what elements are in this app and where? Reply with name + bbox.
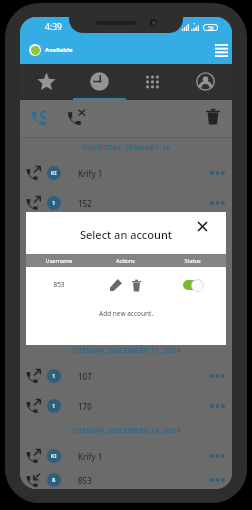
staticText: TUESDAY, DECEMBER 31, 2024 xyxy=(72,346,181,356)
staticText: Username xyxy=(26,257,92,264)
staticText: Select an account xyxy=(80,227,172,242)
staticText: KI xyxy=(51,169,57,177)
staticText: KI xyxy=(51,452,57,460)
button[interactable]: More options xyxy=(206,190,228,216)
staticText: Krify 1 xyxy=(78,168,103,179)
button[interactable]: Close xyxy=(193,217,211,235)
staticText: 853 xyxy=(26,280,92,289)
staticText: 152 xyxy=(78,198,92,209)
staticText: 1 xyxy=(52,372,56,380)
staticText: Add new account. xyxy=(99,309,154,318)
staticText: 1 xyxy=(52,199,56,207)
button[interactable]: All calls xyxy=(29,106,50,127)
staticText: 107 xyxy=(78,371,92,382)
staticText: 56 xyxy=(208,25,214,30)
staticText: TUESDAY, DECEMBER 24, 2024 xyxy=(72,426,181,436)
button[interactable]: More options xyxy=(206,160,228,186)
button[interactable]: Recents xyxy=(73,64,126,100)
button[interactable]: 1 xyxy=(20,391,232,421)
button[interactable]: 1 xyxy=(20,361,232,391)
staticText: 1 xyxy=(52,402,56,410)
button[interactable]: Favorites xyxy=(20,64,73,100)
button[interactable]: 1 xyxy=(20,188,232,218)
staticText: Status xyxy=(159,257,226,264)
button[interactable]: Add new account. xyxy=(26,304,226,345)
button[interactable]: More options xyxy=(206,393,228,419)
staticText: 4:39 xyxy=(45,21,62,33)
button[interactable]: 8 xyxy=(20,471,232,489)
button[interactable]: Toggle account xyxy=(182,277,204,293)
staticText: Available xyxy=(45,46,73,54)
button[interactable]: More options xyxy=(206,363,228,389)
button[interactable]: Delete account xyxy=(127,276,145,294)
button[interactable]: Menu xyxy=(209,38,232,62)
button[interactable]: KI xyxy=(20,158,232,188)
button[interactable]: Edit xyxy=(107,276,125,294)
button[interactable]: Missed calls xyxy=(66,106,87,127)
button[interactable]: Keypad xyxy=(126,64,179,100)
button[interactable]: Contacts xyxy=(179,64,232,100)
button[interactable]: More options xyxy=(206,471,228,489)
button[interactable]: KI xyxy=(20,441,232,471)
staticText: Actions xyxy=(92,257,159,264)
staticText: THURSDAY, JANUARY 16 xyxy=(82,143,171,153)
staticText: 170 xyxy=(78,401,92,412)
staticText: Krify 1 xyxy=(78,451,103,462)
button[interactable]: Delete xyxy=(202,105,224,127)
staticText: 853 xyxy=(78,475,92,486)
button[interactable]: More options xyxy=(206,443,228,469)
staticText: 8 xyxy=(52,476,56,484)
